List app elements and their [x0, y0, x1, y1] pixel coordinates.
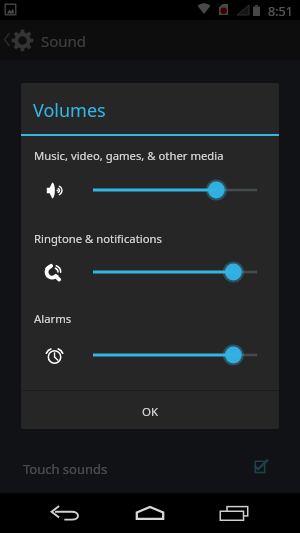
button[interactable]: Navigate up [0, 20, 40, 60]
button[interactable]: Home [108, 493, 192, 533]
staticText: Alarms [34, 311, 72, 326]
button[interactable]: Touch sounds [0, 443, 300, 493]
staticText: Music, video, games, & other media [34, 148, 224, 163]
button[interactable]: Recent apps [192, 493, 276, 533]
staticText: OK [142, 404, 159, 420]
staticText: Ringtone & notifications [34, 231, 162, 246]
staticText: Sound [41, 31, 87, 51]
staticText: Volumes [33, 98, 106, 123]
staticText: 8:51 [268, 3, 293, 20]
button[interactable]: OK [21, 391, 279, 429]
staticText: Touch sounds [23, 460, 108, 478]
button[interactable]: Back [23, 493, 107, 533]
